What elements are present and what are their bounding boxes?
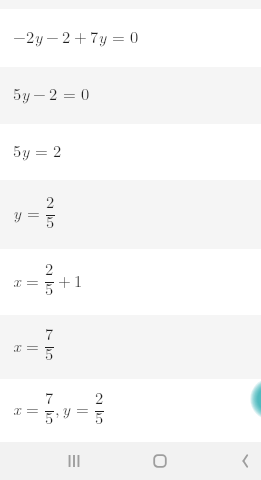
- staticText: 5: [45, 341, 54, 364]
- staticText: 0: [130, 24, 139, 47]
- staticText: =: [63, 81, 76, 104]
- staticText: 2: [45, 256, 54, 279]
- button[interactable]: y: [0, 180, 261, 249]
- staticText: =: [35, 138, 48, 161]
- staticText: −: [46, 24, 59, 47]
- staticText: =: [26, 268, 39, 291]
- staticText: 2y: [26, 24, 43, 47]
- staticText: =: [26, 333, 39, 356]
- staticText: 2: [46, 189, 55, 212]
- button[interactable]: 5y: [0, 124, 261, 180]
- button[interactable]: Home: [117, 442, 203, 480]
- staticText: 2: [49, 81, 58, 104]
- staticText: =: [26, 396, 39, 419]
- staticText: y: [13, 200, 22, 223]
- staticText: +: [58, 268, 71, 291]
- staticText: 5: [45, 405, 54, 428]
- button[interactable]: Show more options: [253, 384, 261, 414]
- button[interactable]: x: [0, 315, 261, 379]
- staticText: =: [27, 200, 40, 223]
- staticText: −: [13, 24, 26, 47]
- staticText: +: [74, 24, 87, 47]
- button[interactable]: Recent apps: [31, 442, 117, 480]
- staticText: x: [13, 333, 21, 356]
- staticText: 5y: [13, 138, 30, 161]
- button[interactable]: Back: [202, 442, 261, 480]
- staticText: 2: [53, 138, 62, 161]
- button[interactable]: 5y: [0, 67, 261, 124]
- staticText: x: [13, 268, 21, 291]
- staticText: 7y: [90, 24, 107, 47]
- staticText: 2: [62, 24, 71, 47]
- staticText: y: [62, 396, 71, 419]
- staticText: ,: [55, 396, 60, 419]
- staticText: 5: [46, 209, 55, 232]
- staticText: =: [76, 396, 89, 419]
- staticText: 5y: [13, 81, 30, 104]
- staticText: x: [13, 396, 21, 419]
- staticText: 1: [74, 268, 83, 291]
- staticText: 5: [45, 276, 54, 299]
- staticText: 7: [45, 321, 54, 344]
- button[interactable]: x: [0, 249, 261, 315]
- staticText: −: [33, 81, 46, 104]
- staticText: 5: [95, 405, 104, 428]
- staticText: 7: [45, 385, 54, 408]
- button[interactable]: −: [0, 9, 261, 67]
- button[interactable]: x: [0, 379, 261, 442]
- staticText: 2: [95, 385, 104, 408]
- staticText: =: [112, 24, 125, 47]
- staticText: 0: [81, 81, 90, 104]
